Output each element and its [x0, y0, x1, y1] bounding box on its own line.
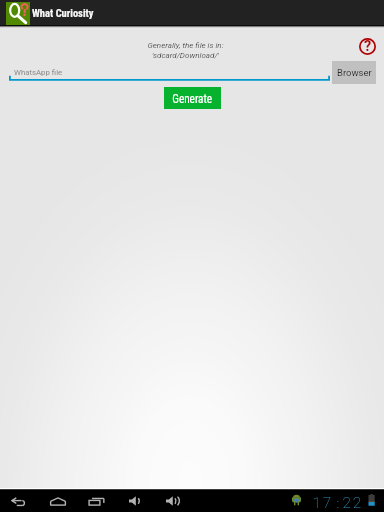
- staticText: 17:22: [312, 492, 364, 512]
- button[interactable]: Browser: [332, 61, 376, 84]
- button[interactable]: Generate: [164, 87, 221, 109]
- staticText: What Curiosity: [32, 7, 94, 19]
- button[interactable]: Help: [358, 37, 377, 56]
- button[interactable]: Recents: [80, 488, 114, 512]
- staticText: Generate: [172, 91, 213, 106]
- staticText: Browser: [337, 67, 372, 78]
- staticText: WhatsApp file: [14, 68, 63, 77]
- button[interactable]: WhatsApp file: [9, 61, 330, 81]
- button[interactable]: Volume down: [117, 488, 151, 512]
- staticText: ?: [364, 38, 372, 55]
- button[interactable]: Volume up: [155, 488, 189, 512]
- staticText: Generally, the file is in:: [147, 41, 224, 50]
- staticText: 'sdcard/Download/': [152, 51, 219, 60]
- button[interactable]: Back: [2, 488, 36, 512]
- button[interactable]: Home: [41, 488, 75, 512]
